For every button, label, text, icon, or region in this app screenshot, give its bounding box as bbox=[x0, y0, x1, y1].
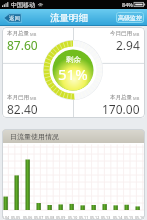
staticText: 05.06 bbox=[23, 215, 33, 220]
staticText: 05.11 bbox=[79, 215, 89, 220]
staticText: 剩余 bbox=[66, 55, 81, 64]
staticText: 82.40 bbox=[7, 101, 38, 117]
staticText: 51% bbox=[58, 64, 88, 84]
button[interactable]: 高级监控 bbox=[116, 12, 144, 23]
staticText: 87.60 bbox=[7, 37, 38, 53]
staticText: 05.14 bbox=[113, 215, 123, 220]
staticText: 05.09 bbox=[56, 215, 66, 220]
staticText: 05.08 bbox=[45, 215, 55, 220]
staticText: 返回 bbox=[9, 15, 20, 22]
button[interactable]: 返回 bbox=[3, 13, 22, 23]
staticText: 今日已用 bbox=[110, 30, 132, 37]
staticText: 本月总量 bbox=[110, 94, 132, 101]
staticText: 170.00 bbox=[102, 101, 140, 117]
staticText: MB bbox=[30, 96, 37, 101]
staticText: 日流量使用情况 bbox=[10, 132, 59, 141]
staticText: 84% bbox=[122, 1, 133, 8]
staticText: 05.05 bbox=[11, 215, 21, 220]
staticText: MB bbox=[133, 32, 140, 37]
staticText: 05.13 bbox=[101, 215, 111, 220]
staticText: 05.12 bbox=[90, 215, 100, 220]
staticText: 中国移动 bbox=[11, 1, 35, 9]
staticText: 05.10 bbox=[68, 215, 78, 220]
staticText: 2.94 bbox=[116, 37, 140, 53]
staticText: 05.16 bbox=[135, 215, 145, 220]
staticText: 05.07 bbox=[34, 215, 44, 220]
staticText: 本月已用 bbox=[7, 94, 29, 101]
staticText: 05.15 bbox=[124, 215, 134, 220]
staticText: 流量明细 bbox=[50, 12, 88, 24]
staticText: 5.04 bbox=[2, 215, 10, 220]
staticText: 本月总量 bbox=[7, 30, 29, 37]
staticText: 高级监控 bbox=[118, 14, 142, 22]
staticText: MB bbox=[30, 32, 37, 37]
staticText: MB bbox=[133, 96, 140, 101]
